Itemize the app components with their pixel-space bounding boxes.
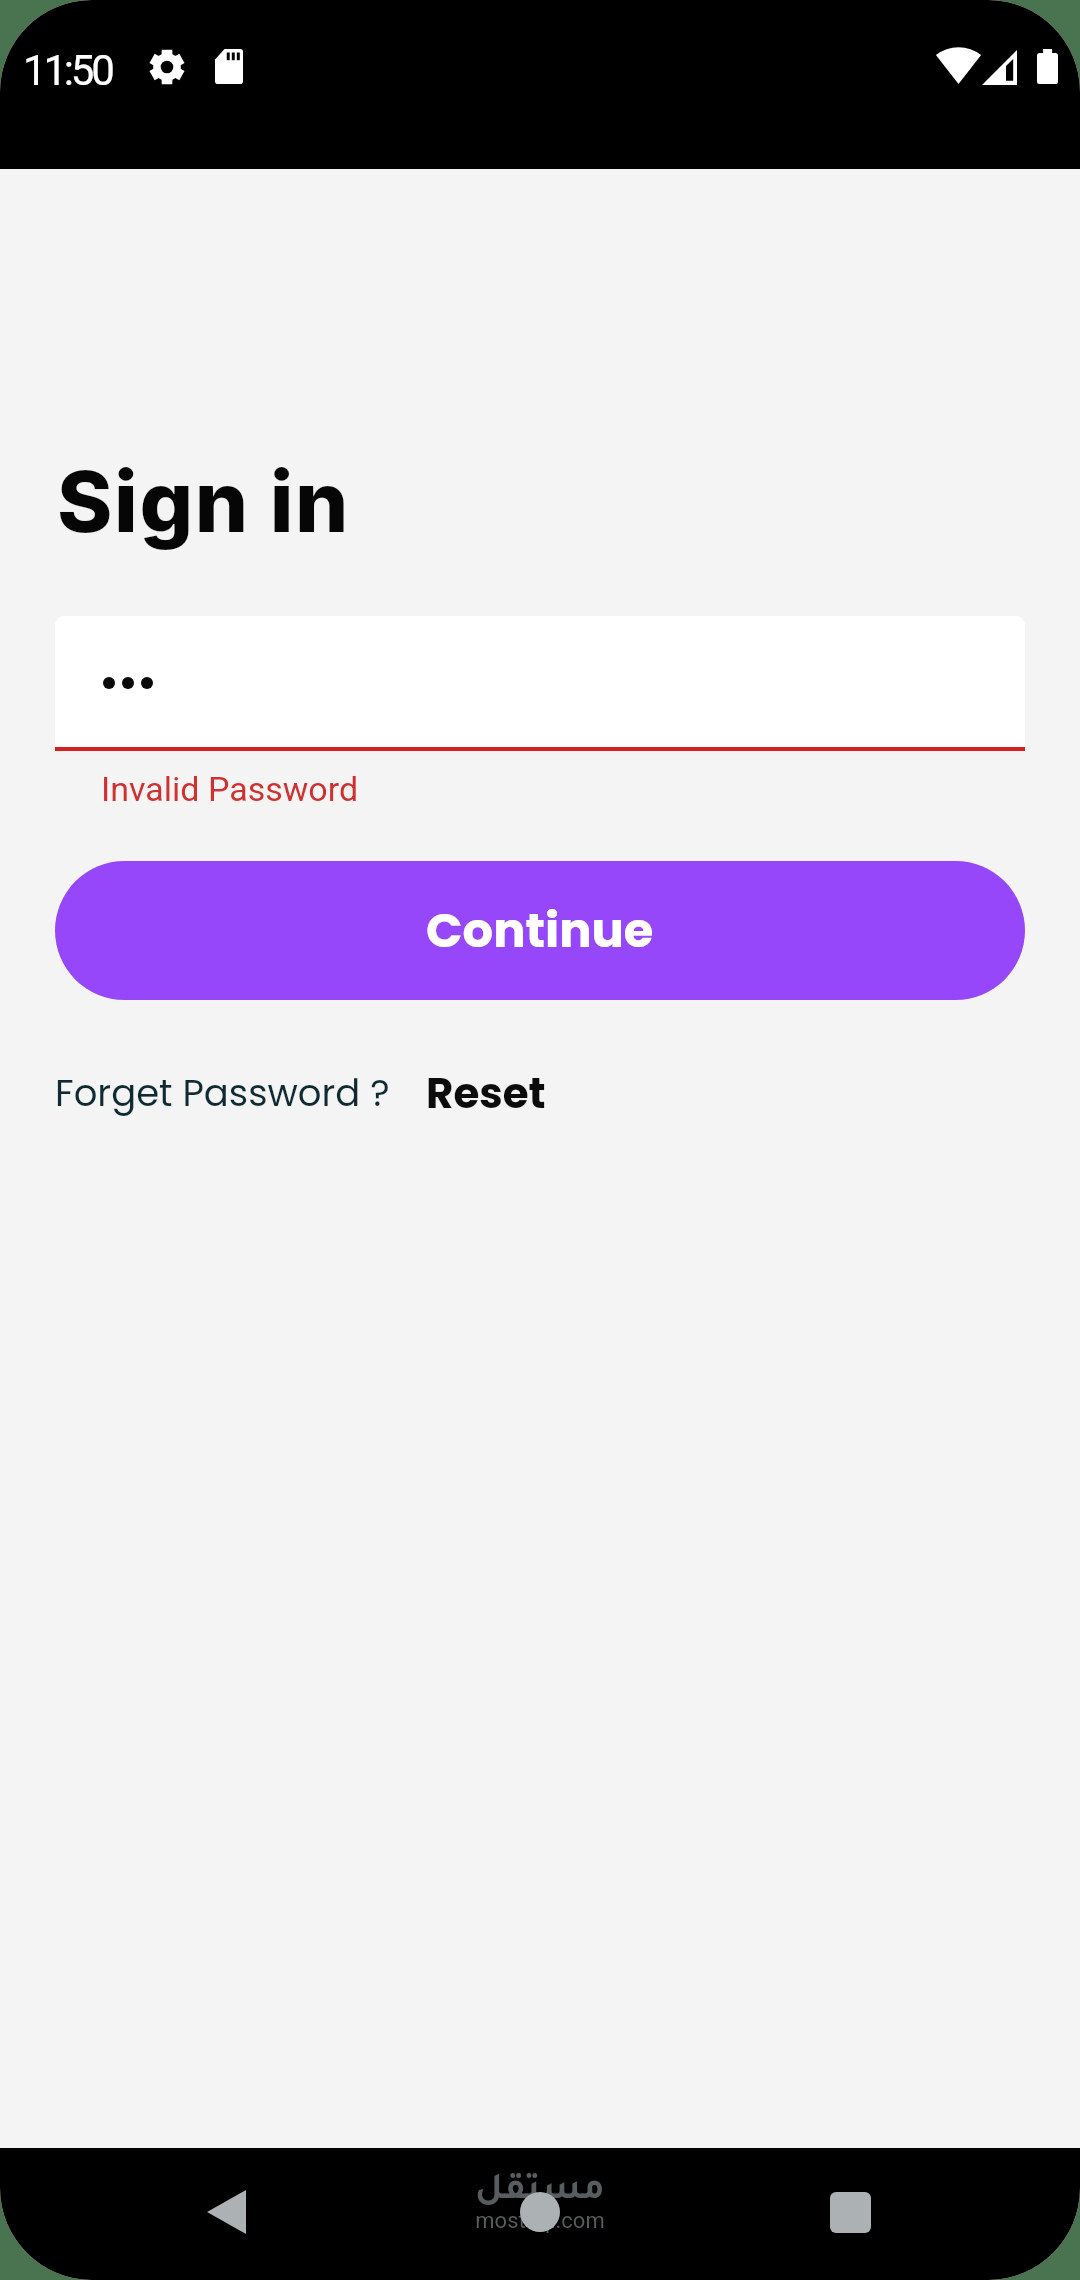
staticText: 11:50 <box>23 46 112 95</box>
staticText: مستقل <box>460 2174 620 2212</box>
button[interactable]: Home <box>505 2177 575 2247</box>
staticText: Sign in <box>57 451 351 553</box>
staticText: Reset <box>426 1064 546 1123</box>
staticText: Invalid Password <box>101 769 359 809</box>
button[interactable]: Recent apps <box>815 2177 885 2247</box>
staticText: Forget Password ? <box>55 1067 390 1119</box>
button[interactable]: Reset <box>426 1064 546 1123</box>
staticText: mostaql.com <box>460 2208 620 2234</box>
button[interactable]: Forget Password ? <box>55 1067 390 1119</box>
button[interactable]: Continue <box>55 861 1025 1000</box>
staticText: Continue <box>426 897 654 964</box>
button[interactable]: Back <box>191 2177 261 2247</box>
button[interactable] <box>55 616 1025 751</box>
